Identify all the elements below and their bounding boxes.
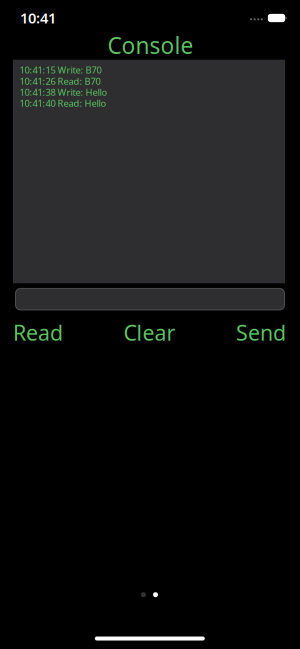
button[interactable]: Clear [123, 318, 175, 347]
staticText: Send [236, 318, 286, 347]
staticText: 10:41:40 Read: Hello [19, 97, 106, 109]
staticText: Read [13, 318, 63, 347]
button[interactable]: Page 2 of 2 [141, 592, 158, 597]
button[interactable]: Send [236, 318, 286, 347]
staticText: 10:41 [20, 8, 56, 27]
staticText: Clear [123, 318, 175, 347]
button[interactable]: Message to send [15, 288, 285, 310]
staticText: 10:41:26 Read: B70 [19, 75, 100, 87]
staticText: Console [107, 30, 193, 60]
staticText: 10:41:38 Write: Hello [19, 86, 107, 98]
button[interactable]: Read [13, 318, 63, 347]
staticText: 10:41:15 Write: B70 [19, 64, 101, 76]
